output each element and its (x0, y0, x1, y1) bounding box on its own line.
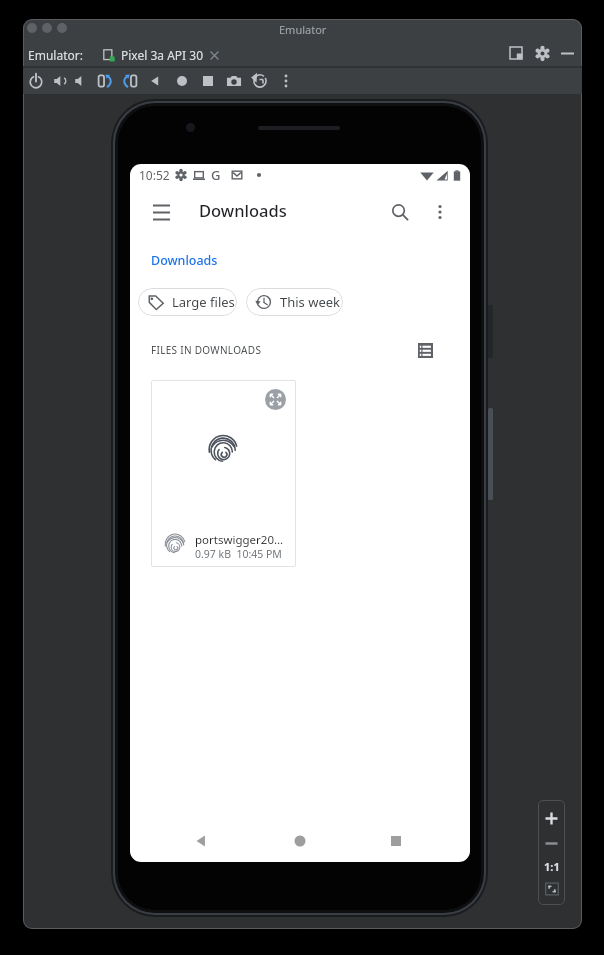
staticText: 10:52 (139, 167, 170, 183)
button[interactable]: Power (28, 73, 44, 89)
button[interactable]: Recent apps (378, 823, 414, 859)
button[interactable]: Back (147, 73, 163, 89)
button[interactable]: Switch to list view (413, 338, 437, 362)
button[interactable]: Rotate left (97, 73, 113, 89)
button[interactable]: Home (174, 73, 190, 89)
button[interactable]: Zoom in (538, 806, 565, 830)
button[interactable]: Rotate right (122, 73, 138, 89)
staticText: portswigger20… (195, 532, 284, 548)
staticText: Pixel 3a API 30 (121, 47, 204, 63)
button[interactable]: Select (265, 389, 286, 410)
staticText: Downloads (199, 199, 287, 221)
button[interactable]: Search (382, 194, 418, 230)
button[interactable]: Downloads (151, 252, 218, 269)
button[interactable]: Home (282, 823, 318, 859)
button[interactable]: Screenshot (226, 73, 242, 89)
staticText: Emulator: (28, 47, 83, 63)
staticText: 1:1 (544, 859, 560, 874)
staticText: G (211, 166, 221, 184)
button[interactable]: Restore (252, 73, 268, 89)
staticText: This week (280, 293, 341, 311)
button[interactable]: Navigation menu (143, 194, 179, 230)
button[interactable]: This week (246, 288, 343, 316)
button[interactable]: Select (151, 380, 296, 567)
button[interactable]: Back (183, 823, 219, 859)
button[interactable]: Zoom out (538, 831, 565, 855)
button[interactable]: Volume up (52, 73, 68, 89)
button[interactable]: Overview (200, 73, 216, 89)
staticText: 0.97 kB 10:45 PM (195, 547, 282, 561)
button[interactable]: Large files (138, 288, 237, 316)
button[interactable]: 1:1 (538, 854, 565, 878)
button[interactable]: Settings (535, 46, 550, 61)
staticText: FILES IN DOWNLOADS (151, 343, 262, 357)
button[interactable]: Minimize (560, 46, 575, 61)
staticText: Emulator (279, 22, 327, 37)
button[interactable]: Fit to screen (538, 877, 565, 901)
staticText: Large files (172, 293, 235, 311)
button[interactable]: More options (422, 194, 458, 230)
button[interactable]: Picture in picture (509, 46, 524, 61)
button[interactable]: More (278, 73, 294, 89)
button[interactable]: Volume down (73, 73, 89, 89)
